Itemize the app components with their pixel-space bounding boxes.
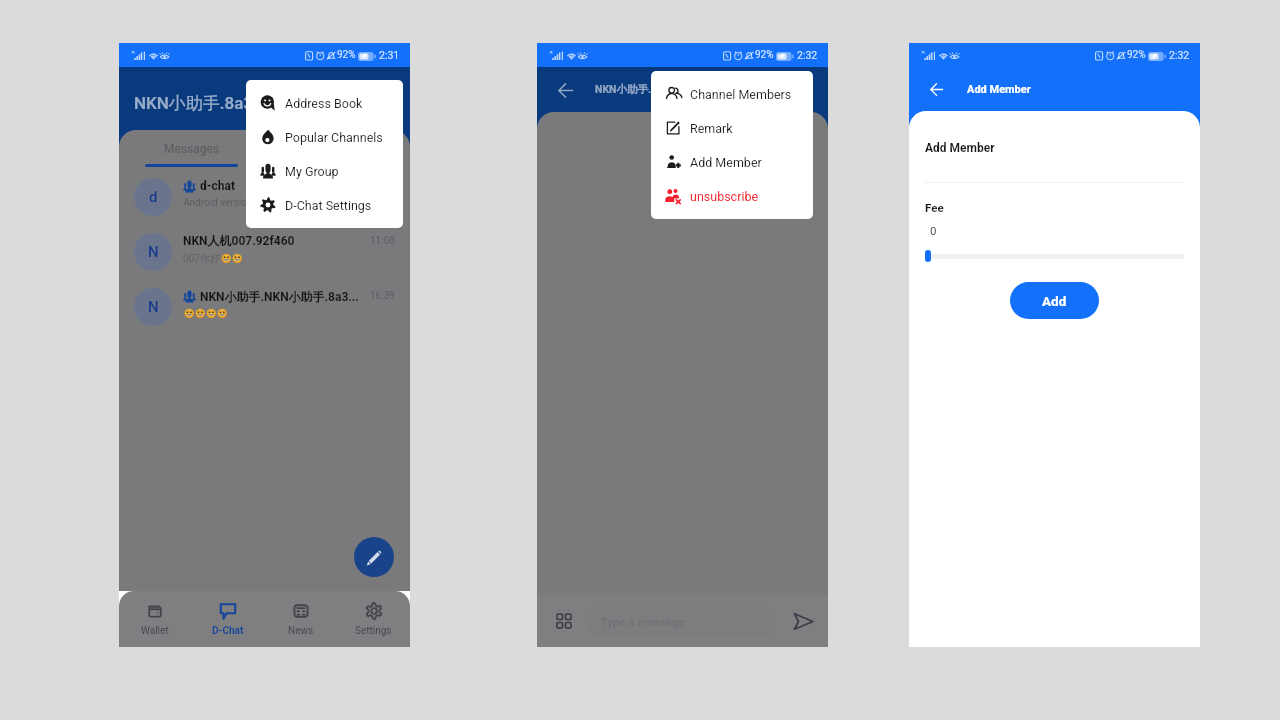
staticText: 11:08 (370, 235, 395, 247)
staticText: NKN小助手.NKN小助手.8a3... (595, 83, 734, 96)
button[interactable]: News (264, 591, 337, 647)
button[interactable]: N (119, 279, 410, 334)
staticText: d (149, 188, 158, 206)
staticText: Wallet (141, 625, 169, 637)
button[interactable]: D-Chat Settings (246, 188, 403, 222)
button[interactable]: unsubscribe (651, 179, 813, 213)
staticText: Settings (355, 625, 392, 637)
button[interactable]: d (119, 169, 410, 224)
staticText: D-Chat Settings (285, 198, 372, 213)
staticText: Add Member (925, 141, 995, 155)
button[interactable]: Address Book (246, 86, 403, 120)
button[interactable]: Send (792, 610, 814, 632)
staticText: Add Member (690, 155, 762, 170)
staticText: NKN小助手.8a3... (134, 93, 268, 114)
staticText: NKN人机007.92f460 (183, 233, 295, 248)
button[interactable]: Compose message (354, 537, 394, 577)
staticText: Add (1042, 293, 1067, 309)
staticText: 2:32 (797, 49, 818, 61)
button[interactable]: Contacts (264, 130, 410, 167)
staticText: News (288, 625, 314, 637)
button[interactable]: Remark (651, 111, 813, 145)
staticText: d-chat (200, 179, 235, 193)
staticText: 16:39 (370, 290, 395, 302)
button[interactable]: Add Member (651, 145, 813, 179)
button[interactable]: Messages (119, 130, 264, 167)
staticText: Android version update... (183, 197, 294, 209)
staticText: Address Book (285, 96, 363, 111)
staticText: 2:31 (379, 49, 400, 61)
staticText: D-Chat (212, 625, 244, 637)
staticText: N (148, 243, 159, 261)
staticText: 92% (755, 49, 774, 61)
staticText: N (148, 298, 159, 316)
button[interactable]: Popular Channels (246, 120, 403, 154)
button[interactable]: Back (929, 82, 943, 96)
staticText: 92% (1127, 49, 1146, 61)
staticText: 2:32 (1169, 49, 1190, 61)
button[interactable]: N (119, 224, 410, 279)
staticText: Fee (925, 201, 944, 214)
staticText: Type a message (601, 615, 685, 628)
staticText: NKN小助手.NKN小助手.8a3... (200, 289, 359, 304)
staticText: 92% (337, 49, 356, 61)
staticText: unsubscribe (690, 189, 759, 204)
staticText: 007你好 (183, 252, 220, 265)
staticText: Messages (164, 142, 220, 156)
staticText: 0 (930, 224, 937, 237)
button[interactable]: Attachments (553, 610, 575, 632)
staticText: Add Member (967, 83, 1031, 96)
staticText: My Group (285, 164, 339, 179)
button[interactable]: Add (1010, 282, 1099, 319)
button[interactable]: Channel Members (651, 77, 813, 111)
button[interactable]: Settings (337, 591, 410, 647)
button[interactable]: D-Chat (191, 591, 264, 647)
button[interactable]: Back (554, 79, 576, 101)
staticText: Channel Members (690, 87, 792, 102)
staticText: Popular Channels (285, 130, 383, 145)
button[interactable]: Wallet (119, 591, 191, 647)
staticText: Remark (690, 121, 733, 136)
button[interactable]: My Group (246, 154, 403, 188)
